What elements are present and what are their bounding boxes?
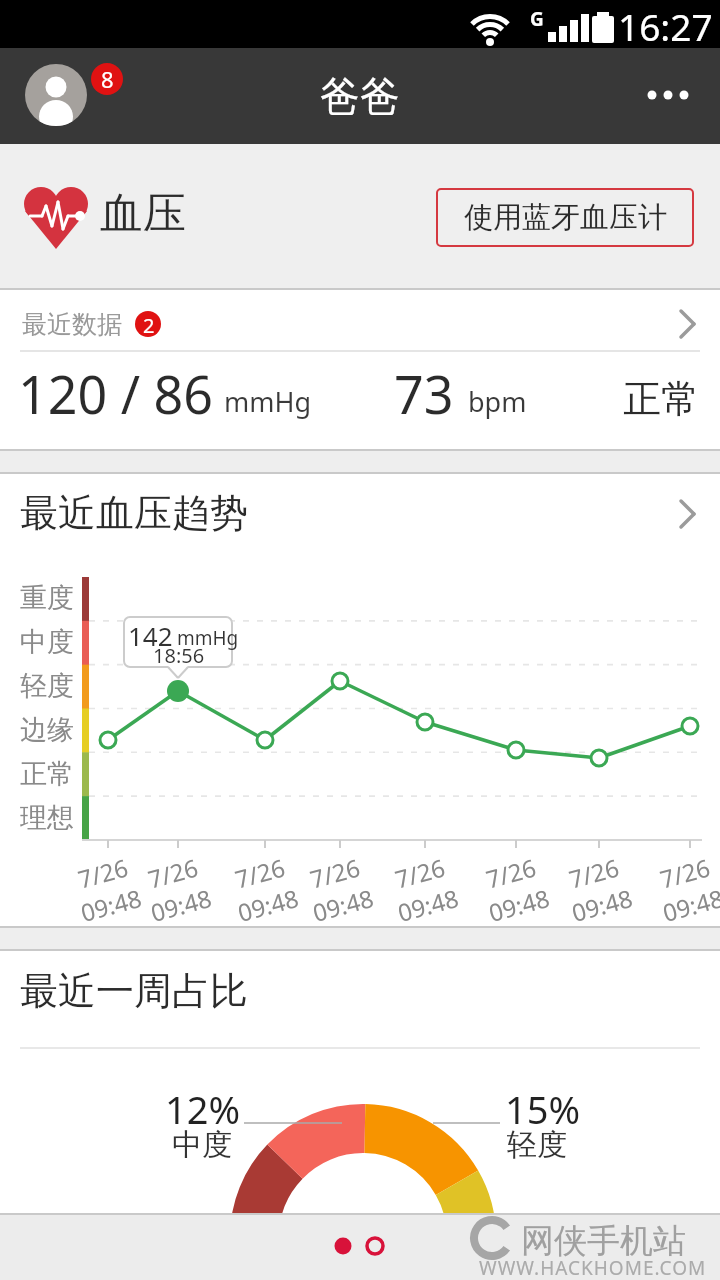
staticText: 15% [505,1083,581,1135]
staticText: 16:27 [618,1,713,49]
staticText: 轻度 [20,669,74,703]
staticText: 120 / 86 [18,358,214,429]
staticText: 7/26 [565,850,623,895]
button[interactable]: 使用蓝牙血压计 [436,188,694,247]
staticText: WWW.HACKHOME.COM [479,1255,707,1280]
staticText: 09:48 [659,881,720,929]
staticText: 正常 [20,757,74,791]
staticText: 09:48 [394,881,462,929]
staticText: 7/26 [74,850,132,895]
staticText: bpm [468,383,527,420]
staticText: mmHg [224,383,312,420]
staticText: 7/26 [144,850,202,895]
button[interactable] [0,951,720,1026]
staticText: 血压 [100,187,186,241]
staticText: 爸爸 [320,71,400,121]
staticText: 2 [143,312,155,339]
button[interactable] [0,290,720,351]
staticText: 09:48 [147,881,215,929]
staticText: 中度 [20,625,74,659]
staticText: 09:48 [309,881,377,929]
staticText: 理想 [20,801,74,835]
button[interactable] [630,72,700,120]
staticText: 142 [128,618,173,653]
staticText: G [530,6,544,32]
staticText: 7/26 [482,850,540,895]
staticText: 重度 [20,581,74,615]
staticText: 轻度 [507,1126,567,1164]
staticText: 7/26 [391,850,449,895]
staticText: 最近血压趋势 [20,489,248,537]
button[interactable] [0,474,720,538]
staticText: 09:48 [77,881,145,929]
staticText: 73 [394,358,454,429]
staticText: 18:56 [153,642,205,669]
staticText: 最近数据 [22,309,122,340]
staticText: 使用蓝牙血压计 [464,199,667,236]
staticText: 09:48 [234,881,302,929]
button[interactable] [10,80,125,144]
staticText: 网侠手机站 [521,1220,686,1262]
staticText: 边缘 [20,713,74,747]
staticText: 09:48 [568,881,636,929]
staticText: 12% [165,1083,241,1135]
staticText: 7/26 [656,850,714,895]
staticText: mmHg [177,625,239,651]
staticText: 正常 [623,375,699,423]
staticText: 8 [101,64,114,94]
staticText: 7/26 [306,850,364,895]
staticText: 09:48 [485,881,553,929]
staticText: 7/26 [231,850,289,895]
staticText: 最近一周占比 [20,967,248,1015]
button[interactable] [320,1223,400,1269]
staticText: 中度 [172,1126,232,1164]
